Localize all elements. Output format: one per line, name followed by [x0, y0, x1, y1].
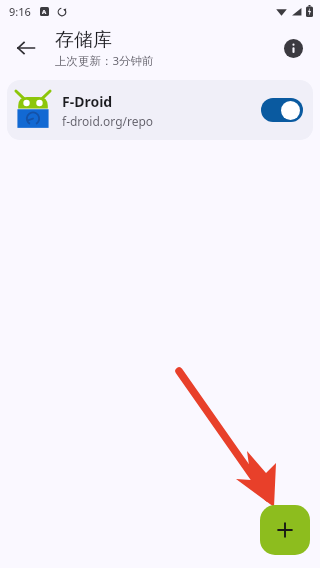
button[interactable]: 信息	[274, 29, 312, 67]
staticText: 存储库	[55, 28, 112, 52]
button[interactable]: 返回	[6, 28, 46, 68]
button[interactable]: 启用仓库	[261, 98, 303, 122]
staticText: F-Droid	[62, 92, 113, 111]
staticText: 上次更新：3分钟前	[55, 53, 154, 69]
button[interactable]: F-Droid	[7, 80, 313, 140]
staticText: f-droid.org/repo	[62, 113, 154, 129]
staticText: 9:16	[9, 4, 31, 19]
staticText: A	[42, 8, 47, 16]
button[interactable]: 添加存储库	[260, 505, 310, 555]
